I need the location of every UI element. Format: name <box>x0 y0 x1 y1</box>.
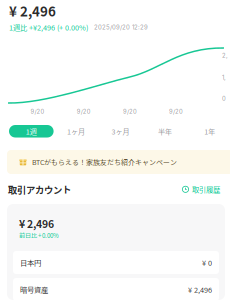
staticText: 0 <box>222 95 226 102</box>
staticText: 半年 <box>158 126 172 136</box>
button[interactable]: 1ヶ月 <box>54 125 98 137</box>
staticText: 1週 <box>26 126 37 136</box>
staticText: 取引履歴 <box>192 184 220 195</box>
button[interactable]: 暗号資産 <box>13 278 219 300</box>
staticText: ¥ 2,496 <box>19 216 54 231</box>
staticText: 2025/09/20 12:29 <box>94 24 148 31</box>
button[interactable]: 3ヶ月 <box>98 125 143 137</box>
staticText: 1週比 +¥2,496 (+ 0.00%) <box>9 22 88 33</box>
staticText: ¥ 0 <box>202 257 212 268</box>
button[interactable]: BTCがもらえる！家族友だち紹介キャンペーン <box>7 150 230 174</box>
staticText: 日本円 <box>20 257 41 268</box>
button[interactable]: 取引履歴 <box>182 184 220 195</box>
staticText: ¥ 2,496 <box>188 284 212 295</box>
staticText: 1ヶ月 <box>67 126 85 136</box>
button[interactable]: 1週 <box>9 125 54 137</box>
staticText: 9/20 <box>77 108 91 115</box>
button[interactable]: 日本円 <box>13 251 219 274</box>
button[interactable]: 1年 <box>187 125 230 137</box>
staticText: 1年 <box>204 126 215 136</box>
staticText: 前日比 + 0.00% <box>19 231 59 240</box>
staticText: 9/20 <box>30 108 44 115</box>
staticText: ¥ 2,496 <box>9 1 56 20</box>
staticText: BTCがもらえる！家族友だち紹介キャンペーン <box>32 157 177 167</box>
staticText: 9/20 <box>169 108 183 115</box>
staticText: 取引アカウント <box>8 183 71 196</box>
staticText: 暗号資産 <box>20 284 48 295</box>
staticText: 2, <box>222 52 228 59</box>
button[interactable]: 半年 <box>143 125 187 137</box>
staticText: 3ヶ月 <box>111 126 129 136</box>
staticText: 1, <box>222 74 226 81</box>
staticText: 9/20 <box>123 108 137 115</box>
